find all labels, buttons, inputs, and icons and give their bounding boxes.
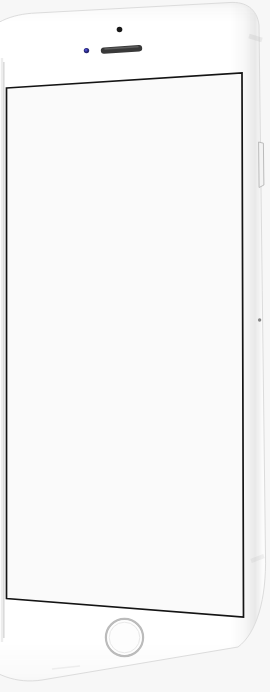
button[interactable]: White smartphone, front view <box>0 0 270 692</box>
